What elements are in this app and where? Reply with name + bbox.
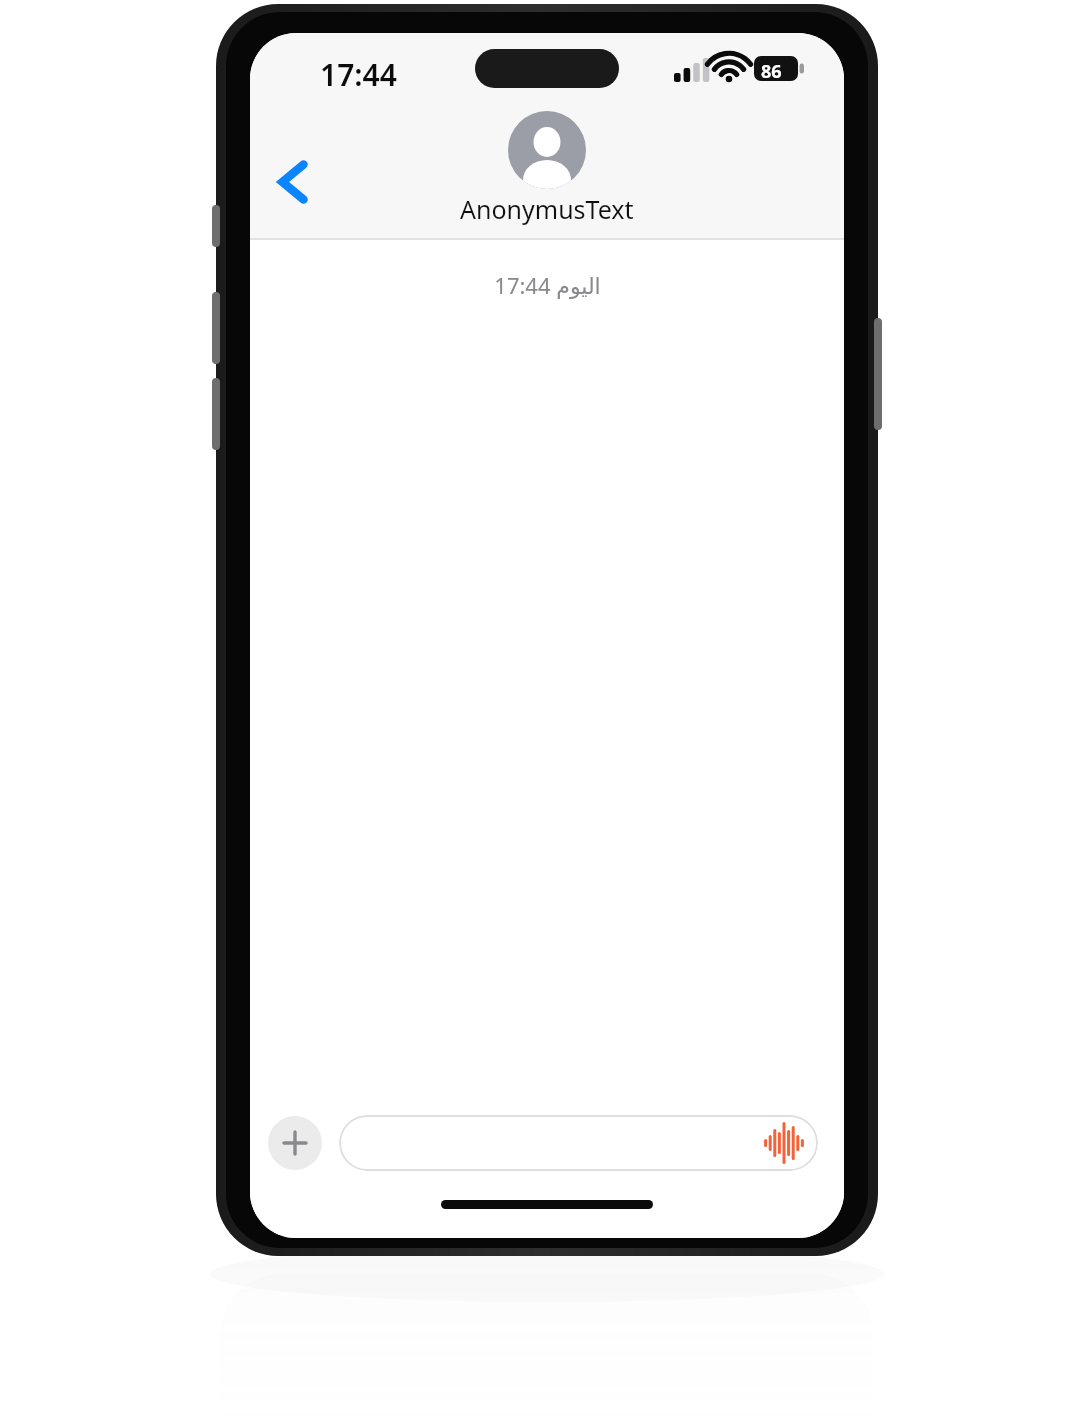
staticText: اليوم 17:44 bbox=[494, 270, 601, 300]
button[interactable]: AnonymusText bbox=[460, 111, 634, 226]
staticText: 86 bbox=[761, 59, 782, 84]
button[interactable]: Voice message bbox=[339, 1115, 818, 1171]
button[interactable]: Voice message bbox=[762, 1121, 806, 1165]
button[interactable]: Add attachment bbox=[268, 1116, 322, 1170]
staticText: AnonymusText bbox=[460, 192, 634, 226]
staticText: 17:44 bbox=[320, 54, 397, 95]
button[interactable]: Back bbox=[264, 150, 324, 214]
